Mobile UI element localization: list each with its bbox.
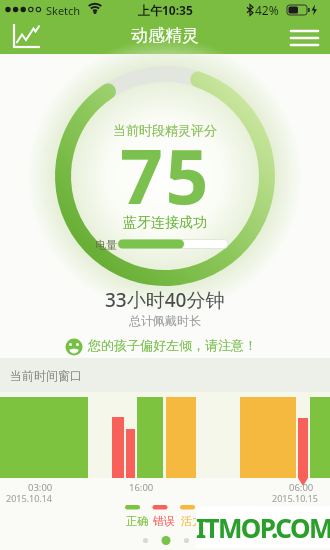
- staticText: 正确: [126, 514, 148, 528]
- button[interactable]: [284, 22, 326, 52]
- staticText: 上午10:35: [138, 2, 193, 18]
- staticText: 动感精灵: [131, 25, 199, 46]
- staticText: 42%: [255, 2, 279, 18]
- staticText: 活力: [181, 514, 203, 528]
- staticText: 当前时间窗口: [10, 368, 82, 383]
- staticText: 当前时段精灵评分: [113, 122, 217, 138]
- staticText: 蓝牙连接成功: [123, 214, 207, 232]
- staticText: 03:00: [28, 481, 53, 494]
- staticText: 2015.10.15: [272, 492, 319, 504]
- staticText: 2015.10.14: [6, 492, 53, 504]
- staticText: 总计佩戴时长: [129, 313, 201, 328]
- staticText: 错误: [153, 514, 175, 528]
- staticText: 06:00: [289, 481, 314, 494]
- staticText: 电量: [95, 238, 117, 252]
- staticText: 您的孩子偏好左倾，请注意！: [88, 337, 257, 353]
- staticText: 33小时40分钟: [105, 287, 225, 313]
- button[interactable]: [6, 20, 46, 52]
- staticText: ITMOP.COM: [196, 510, 330, 545]
- button[interactable]: 您的孩子偏好左倾，请注意！: [60, 335, 275, 359]
- staticText: Sketch: [46, 3, 81, 18]
- staticText: 75: [120, 124, 211, 226]
- staticText: 16:00: [129, 481, 154, 494]
